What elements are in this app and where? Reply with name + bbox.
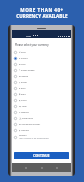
staticText: ₹ Indian Rupee bbox=[19, 69, 35, 72]
staticText: Please select your currency bbox=[15, 43, 49, 47]
button[interactable]: Recent apps bbox=[55, 166, 59, 170]
staticText: € Euro bbox=[19, 87, 26, 90]
staticText: ؋ Afghani bbox=[19, 129, 29, 132]
staticText: £ Pound bbox=[19, 57, 28, 60]
staticText: K Kwanza bbox=[19, 111, 29, 114]
staticText: ₩ Won bbox=[19, 63, 26, 66]
staticText: R$ Real bbox=[19, 105, 27, 108]
button[interactable]: $ Dollar bbox=[12, 79, 71, 85]
staticText: 7:45 bbox=[26, 34, 31, 37]
staticText: ฿ Baht bbox=[19, 93, 26, 96]
button[interactable]: ₹ Indian Rupee bbox=[12, 67, 71, 73]
staticText: ₨ Rupee bbox=[19, 75, 28, 78]
staticText: MORE THAN 40+ bbox=[20, 7, 64, 13]
staticText: $ Dollar bbox=[19, 81, 27, 84]
button[interactable]: Default bbox=[12, 133, 71, 141]
button[interactable]: ฿ Baht bbox=[12, 91, 71, 97]
button[interactable]: R$ Real bbox=[12, 103, 71, 109]
button[interactable]: € Euro bbox=[12, 85, 71, 91]
button[interactable]: ؋ Afghani bbox=[12, 127, 71, 133]
staticText: ₱ Peso bbox=[19, 51, 26, 54]
staticText: Default bbox=[19, 134, 27, 137]
button[interactable]: Back bbox=[24, 166, 28, 170]
button[interactable]: ₩ Won bbox=[12, 61, 71, 67]
button[interactable]: K Kwanza bbox=[12, 109, 71, 115]
button[interactable]: Bs Venezuela bolivar bbox=[12, 121, 71, 127]
button[interactable]: ₨ Rupee bbox=[12, 73, 71, 79]
staticText: ₡ Colon bbox=[19, 99, 27, 102]
staticText: ﷼ Saudi Riyal bbox=[19, 117, 34, 120]
button[interactable]: £ Pound bbox=[12, 55, 71, 61]
button[interactable]: Home bbox=[40, 166, 44, 170]
staticText: Your currency is set automatically bbox=[19, 137, 49, 140]
staticText: CURRENCY AVAILABLE bbox=[16, 13, 68, 19]
staticText: Bs Venezuela bolivar bbox=[19, 123, 41, 126]
button[interactable]: ₱ Peso bbox=[12, 49, 71, 55]
button[interactable]: ﷼ Saudi Riyal bbox=[12, 115, 71, 121]
button[interactable]: ₡ Colon bbox=[12, 97, 71, 103]
staticText: CONTINUE bbox=[33, 154, 50, 158]
button[interactable]: CONTINUE bbox=[14, 152, 69, 159]
